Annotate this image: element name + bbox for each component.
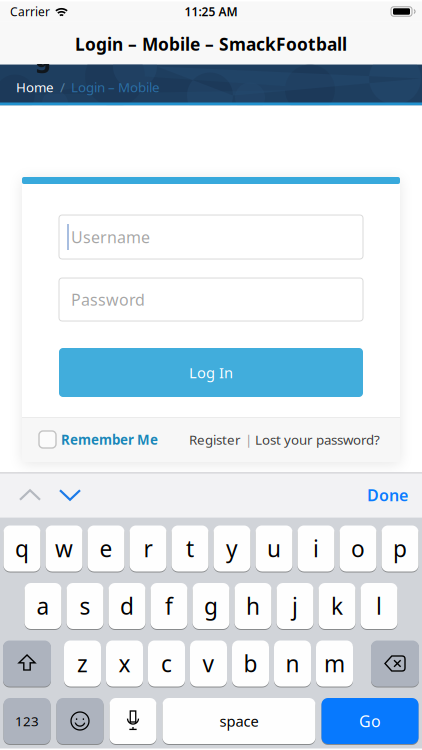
button[interactable]: Password xyxy=(59,278,363,321)
button[interactable]: e xyxy=(87,525,124,572)
button[interactable]: Delete xyxy=(371,640,419,687)
staticText: g xyxy=(35,41,51,74)
staticText: n xyxy=(285,648,299,678)
staticText: h xyxy=(246,591,260,621)
button[interactable]: Home xyxy=(16,78,54,96)
staticText: d xyxy=(120,591,134,621)
button[interactable]: r xyxy=(129,525,166,572)
button[interactable]: y xyxy=(213,525,250,572)
staticText: a xyxy=(36,591,49,621)
staticText: Log In xyxy=(189,363,233,382)
staticText: j xyxy=(292,591,298,621)
button[interactable]: l xyxy=(360,582,397,629)
button[interactable]: v xyxy=(190,640,227,687)
staticText: Carrier xyxy=(10,3,50,19)
button[interactable]: Register xyxy=(189,431,241,448)
button[interactable]: g xyxy=(192,582,229,629)
staticText: p xyxy=(393,533,407,563)
button[interactable]: Next field xyxy=(58,483,82,507)
staticText: m xyxy=(324,648,345,678)
staticText: Remember Me xyxy=(61,431,158,448)
staticText: 11:25 AM xyxy=(184,3,237,19)
staticText: u xyxy=(267,533,281,563)
button[interactable]: 123 xyxy=(3,697,50,744)
staticText: x xyxy=(118,648,130,678)
button[interactable]: Go xyxy=(321,697,418,744)
button[interactable]: Lost your password? xyxy=(255,431,380,448)
staticText: t xyxy=(186,533,194,563)
staticText: Go xyxy=(359,710,381,732)
staticText: 123 xyxy=(15,712,39,730)
button[interactable]: Dictate xyxy=(109,697,156,744)
button[interactable]: Login – Mobile xyxy=(71,78,160,96)
staticText: y xyxy=(226,533,238,563)
button[interactable]: q xyxy=(3,525,40,572)
button[interactable]: Shift xyxy=(3,640,51,687)
staticText: r xyxy=(143,533,152,563)
staticText: Login – Mobile xyxy=(71,78,160,96)
button[interactable]: k xyxy=(318,582,355,629)
button[interactable]: c xyxy=(148,640,185,687)
staticText: z xyxy=(77,648,88,678)
staticText: Done xyxy=(367,484,408,506)
staticText: | xyxy=(245,431,252,448)
button[interactable]: s xyxy=(66,582,103,629)
staticText: q xyxy=(15,533,29,563)
button[interactable]: d xyxy=(108,582,145,629)
staticText: f xyxy=(165,591,173,621)
button[interactable]: u xyxy=(255,525,292,572)
button[interactable]: p xyxy=(381,525,418,572)
staticText: v xyxy=(202,648,214,678)
button[interactable]: m xyxy=(316,640,353,687)
button[interactable]: n xyxy=(274,640,311,687)
button[interactable]: Username xyxy=(59,215,363,259)
staticText: l xyxy=(376,591,382,621)
staticText: Login – Mobile – SmackFootball xyxy=(75,32,347,55)
staticText: k xyxy=(331,591,343,621)
button[interactable]: o xyxy=(339,525,376,572)
button[interactable]: Remember Me xyxy=(39,431,158,448)
staticText: / xyxy=(60,78,65,96)
button[interactable]: Done xyxy=(367,484,408,506)
button[interactable]: Log In xyxy=(59,348,363,397)
button[interactable]: x xyxy=(106,640,143,687)
staticText: e xyxy=(99,533,112,563)
staticText: Register xyxy=(189,431,241,448)
button[interactable]: a xyxy=(24,582,61,629)
button[interactable]: Emoji xyxy=(56,697,103,744)
staticText: w xyxy=(55,533,73,563)
button[interactable]: Previous field xyxy=(18,483,42,507)
staticText: Username xyxy=(71,226,150,248)
button[interactable]: h xyxy=(234,582,271,629)
button[interactable]: space xyxy=(162,697,315,744)
staticText: Home xyxy=(16,78,54,96)
staticText: Lost your password? xyxy=(255,431,380,448)
staticText: g xyxy=(204,591,218,621)
staticText: o xyxy=(351,533,365,563)
staticText: s xyxy=(79,591,90,621)
staticText: b xyxy=(243,648,257,678)
button[interactable]: f xyxy=(150,582,187,629)
button[interactable]: j xyxy=(276,582,313,629)
button[interactable]: i xyxy=(297,525,334,572)
staticText: c xyxy=(161,648,172,678)
staticText: i xyxy=(313,533,319,563)
button[interactable]: b xyxy=(232,640,269,687)
button[interactable]: w xyxy=(45,525,82,572)
button[interactable]: z xyxy=(64,640,101,687)
button[interactable]: t xyxy=(171,525,208,572)
staticText: space xyxy=(219,711,258,731)
staticText: Password xyxy=(71,289,145,310)
